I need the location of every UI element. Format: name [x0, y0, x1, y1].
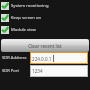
button[interactable]: Clear recent list [1, 39, 89, 52]
staticText: 224.0.0.1 [32, 56, 52, 62]
staticText: SDR Address [2, 55, 27, 61]
staticText: SDR Port [2, 68, 19, 74]
staticText: System monitoring [11, 3, 49, 9]
staticText: 1234 [32, 68, 43, 74]
staticText: Module view [11, 27, 36, 33]
button[interactable]: Module view [0, 24, 90, 36]
staticText: Clear recent list [28, 43, 62, 49]
button[interactable]: 224.0.0.1 [30, 52, 88, 64]
button[interactable]: Keep screen on [0, 12, 90, 24]
button[interactable]: System monitoring [0, 0, 90, 12]
button[interactable]: 1234 [30, 65, 88, 77]
staticText: Keep screen on [11, 15, 42, 21]
